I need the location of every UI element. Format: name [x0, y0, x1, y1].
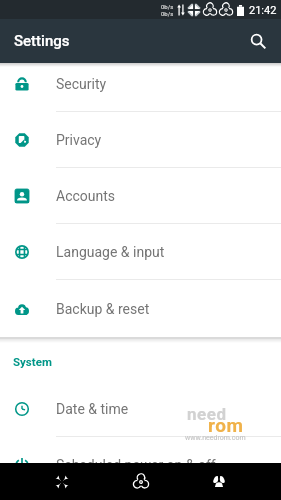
button[interactable]: Security	[0, 56, 281, 112]
staticText: Scheduled power on & off	[56, 457, 216, 473]
button[interactable]: Scheduled power on & off	[0, 437, 281, 493]
staticText: rom	[208, 414, 244, 436]
staticText: Settings	[14, 32, 70, 50]
staticText: 21:42	[249, 4, 277, 17]
staticText: Backup & reset	[56, 301, 150, 317]
button[interactable]: Back	[40, 463, 84, 500]
staticText: Security	[56, 76, 107, 92]
button[interactable]: Privacy	[0, 112, 281, 168]
staticText: Language & input	[56, 244, 165, 260]
button[interactable]: Recent apps	[197, 463, 241, 500]
staticText: Date & time	[56, 401, 129, 417]
button[interactable]: Backup & reset	[0, 280, 281, 339]
button[interactable]: Accounts	[0, 168, 281, 224]
staticText: need	[187, 404, 227, 424]
button[interactable]: Date & time	[0, 381, 281, 437]
staticText: Privacy	[56, 132, 102, 148]
button[interactable]: Language & input	[0, 224, 281, 280]
staticText: www.needrom.com	[185, 434, 246, 442]
staticText: 0b/s	[161, 10, 174, 17]
staticText: Accounts	[56, 188, 116, 204]
staticText: System	[13, 355, 52, 368]
button[interactable]: Search	[241, 24, 275, 58]
staticText: 0b/s	[161, 3, 174, 10]
button[interactable]: Home	[119, 463, 163, 500]
